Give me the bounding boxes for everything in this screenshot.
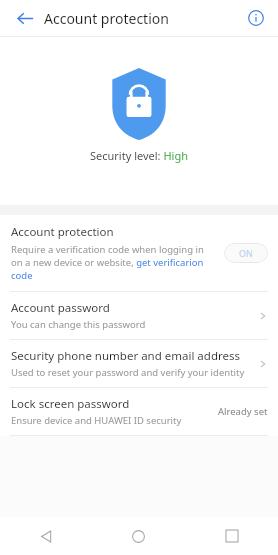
staticText: Lock screen password [11, 396, 130, 412]
staticText: Account password [11, 300, 110, 316]
staticText: Account protection [11, 224, 114, 240]
button[interactable]: Home [92, 517, 185, 555]
button[interactable]: Back [0, 517, 92, 555]
staticText: Security level: High [90, 148, 188, 163]
button[interactable]: Security phone number and email address [0, 340, 278, 387]
staticText: Already set [218, 405, 268, 418]
staticText: Security phone number and email address [11, 348, 240, 364]
staticText: Require a verification code when logging… [11, 243, 216, 282]
staticText: ON [239, 247, 253, 259]
button[interactable]: Lock screen password [0, 388, 278, 435]
staticText: Account protection [44, 9, 169, 28]
button[interactable]: Account protection [0, 215, 278, 291]
staticText: You can change this password [11, 318, 146, 331]
button[interactable]: Back [11, 4, 39, 32]
button[interactable]: Info [243, 5, 269, 31]
staticText: Used to reset your password and verify y… [11, 366, 245, 379]
button[interactable]: ON [224, 243, 268, 263]
staticText: Ensure device and HUAWEI ID security [11, 414, 182, 427]
button[interactable]: Account password [0, 292, 278, 339]
button[interactable]: Recents [185, 517, 278, 555]
